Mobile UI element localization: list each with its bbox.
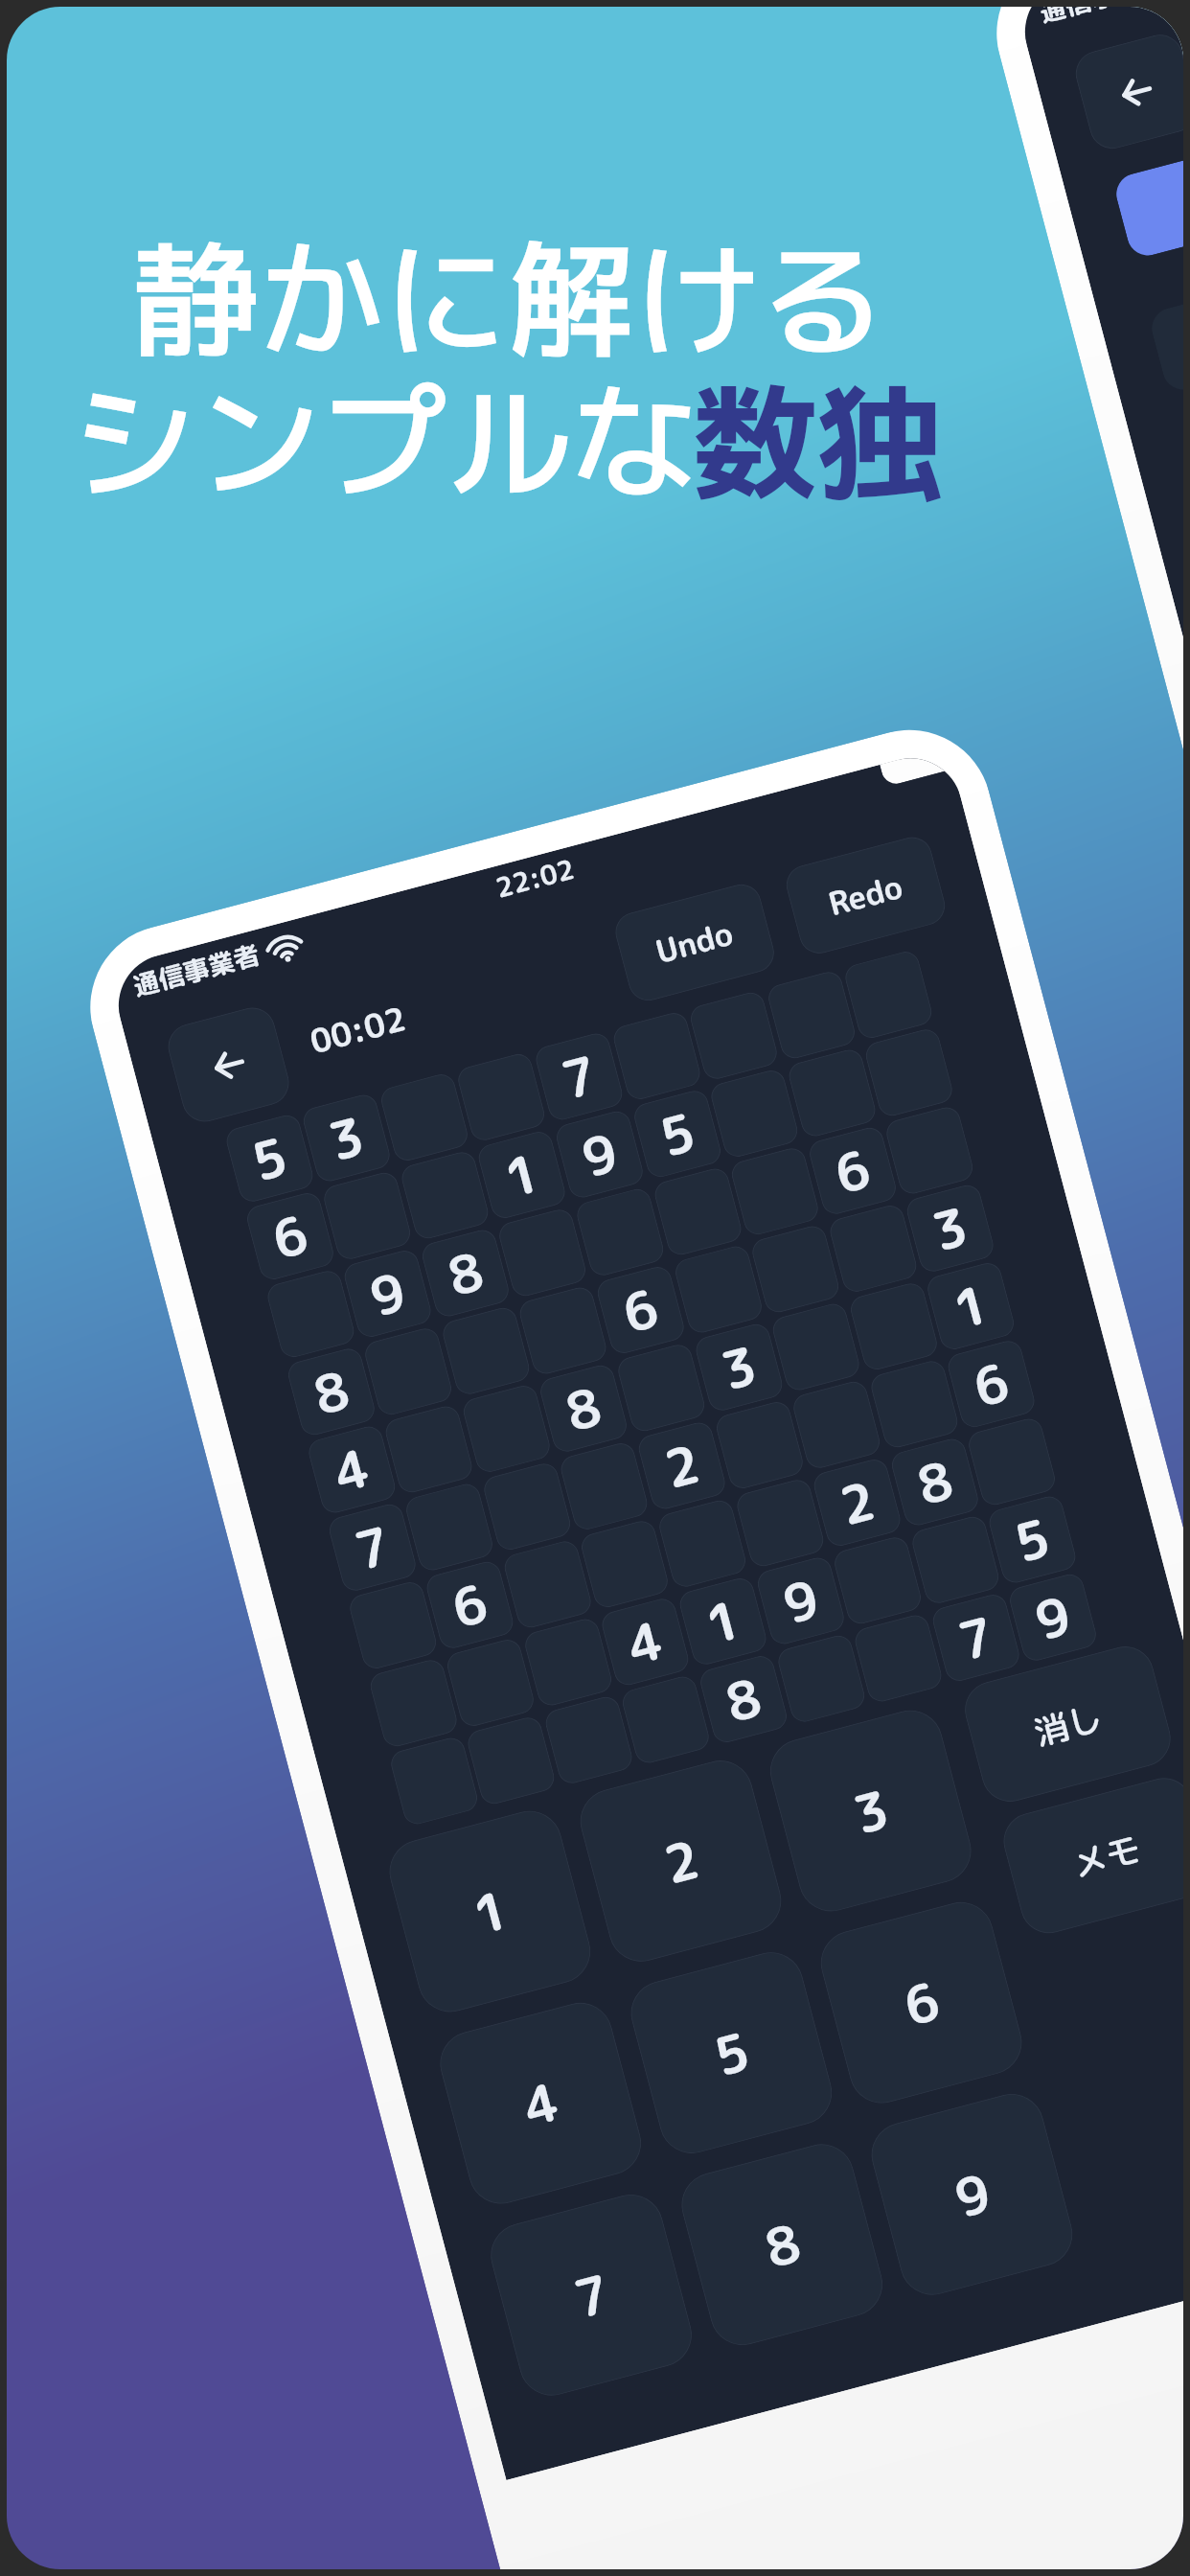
button[interactable]: 9 — [1007, 1571, 1099, 1664]
button[interactable] — [388, 1735, 481, 1827]
button[interactable] — [465, 1714, 557, 1807]
button[interactable] — [688, 989, 780, 1082]
button[interactable]: Back — [163, 1003, 294, 1127]
button[interactable]: 7 — [326, 1501, 419, 1594]
button[interactable] — [883, 1104, 976, 1197]
button[interactable] — [656, 1497, 749, 1590]
button[interactable] — [863, 1026, 955, 1119]
button[interactable] — [481, 1460, 573, 1553]
button[interactable]: Redo — [782, 833, 949, 958]
button[interactable] — [383, 1403, 475, 1496]
button[interactable] — [578, 1518, 671, 1610]
button[interactable] — [440, 1305, 532, 1397]
button[interactable]: Easy — [1112, 7, 1183, 260]
button[interactable]: 9 — [553, 1108, 646, 1201]
button[interactable] — [708, 1067, 801, 1160]
button[interactable]: 消し — [959, 1640, 1177, 1808]
button[interactable]: 6 — [945, 1338, 1038, 1430]
button[interactable] — [455, 1051, 548, 1143]
button[interactable]: 5 — [631, 1088, 724, 1180]
button[interactable] — [790, 1379, 883, 1471]
button[interactable]: 5 — [223, 1112, 316, 1205]
button[interactable]: 5 — [624, 1945, 839, 2161]
staticText: 1 — [698, 1582, 748, 1661]
button[interactable] — [652, 1165, 744, 1258]
button[interactable] — [347, 1579, 439, 1672]
button[interactable]: 3 — [904, 1182, 996, 1275]
button[interactable]: 9 — [341, 1247, 434, 1340]
button[interactable] — [615, 1342, 708, 1434]
button[interactable]: 4 — [306, 1423, 398, 1516]
button[interactable]: 6 — [244, 1190, 337, 1283]
button[interactable] — [367, 1657, 460, 1749]
button[interactable]: Undo — [611, 880, 778, 1005]
button[interactable]: 3 — [300, 1092, 393, 1184]
button[interactable] — [966, 1416, 1058, 1508]
button[interactable] — [831, 1534, 924, 1627]
button[interactable] — [749, 1223, 842, 1316]
button[interactable]: 5 — [986, 1493, 1079, 1586]
button[interactable] — [620, 1674, 712, 1766]
button[interactable] — [517, 1284, 609, 1377]
button[interactable]: 1 — [476, 1129, 568, 1221]
button[interactable] — [848, 1280, 940, 1373]
button[interactable]: 9 — [755, 1555, 847, 1647]
button[interactable] — [522, 1616, 615, 1709]
button[interactable]: 7 — [930, 1592, 1022, 1684]
button[interactable]: 8 — [419, 1227, 512, 1319]
button[interactable] — [868, 1358, 961, 1451]
button[interactable]: 1 — [925, 1260, 1017, 1352]
button[interactable] — [729, 1145, 821, 1238]
button[interactable] — [842, 949, 935, 1041]
button[interactable] — [403, 1481, 496, 1573]
button[interactable]: 6 — [595, 1264, 687, 1356]
button[interactable]: 8 — [697, 1653, 790, 1746]
button[interactable] — [770, 1301, 862, 1393]
button[interactable]: 8 — [674, 2137, 890, 2352]
button[interactable] — [378, 1071, 471, 1164]
button[interactable]: 9 — [864, 2087, 1080, 2302]
button[interactable] — [786, 1047, 878, 1139]
button[interactable]: 4 — [433, 1996, 648, 2211]
button[interactable]: 2 — [573, 1753, 789, 1969]
button[interactable]: 3 — [693, 1321, 785, 1414]
button[interactable] — [362, 1325, 455, 1418]
button[interactable]: 2 — [811, 1456, 903, 1549]
button[interactable] — [399, 1149, 491, 1242]
button[interactable] — [909, 1514, 1002, 1606]
button[interactable]: 8 — [285, 1346, 378, 1438]
button[interactable] — [672, 1243, 765, 1336]
button[interactable]: 2 — [636, 1419, 728, 1512]
button[interactable]: 1 — [677, 1575, 769, 1668]
button[interactable] — [543, 1694, 635, 1786]
button[interactable] — [496, 1207, 589, 1299]
button[interactable]: Back — [1071, 30, 1183, 154]
button[interactable]: 7 — [483, 2187, 699, 2403]
button[interactable] — [444, 1637, 537, 1729]
button[interactable]: 4 — [599, 1596, 691, 1688]
button[interactable]: 6 — [806, 1125, 899, 1217]
button[interactable] — [713, 1399, 806, 1491]
button[interactable] — [765, 969, 858, 1061]
button[interactable]: メモ — [997, 1772, 1183, 1940]
button[interactable] — [321, 1170, 413, 1262]
button[interactable] — [611, 1010, 703, 1102]
button[interactable]: 8 — [537, 1362, 630, 1455]
button[interactable] — [574, 1186, 666, 1279]
button[interactable] — [827, 1202, 920, 1295]
button[interactable]: 7 — [533, 1030, 625, 1123]
button[interactable] — [558, 1440, 650, 1533]
button[interactable] — [734, 1477, 827, 1569]
button[interactable] — [265, 1268, 357, 1360]
button[interactable] — [460, 1382, 553, 1475]
staticText: 数独 — [692, 354, 944, 529]
button[interactable] — [852, 1612, 945, 1705]
button[interactable]: 3 — [763, 1703, 978, 1919]
button[interactable]: 6 — [424, 1559, 516, 1651]
button[interactable]: 1 — [382, 1804, 598, 2019]
button[interactable]: 6 — [814, 1895, 1029, 2110]
button[interactable]: 8 — [889, 1436, 981, 1528]
button[interactable]: Normal — [1147, 116, 1183, 394]
button[interactable] — [501, 1538, 594, 1631]
button[interactable] — [775, 1632, 868, 1725]
